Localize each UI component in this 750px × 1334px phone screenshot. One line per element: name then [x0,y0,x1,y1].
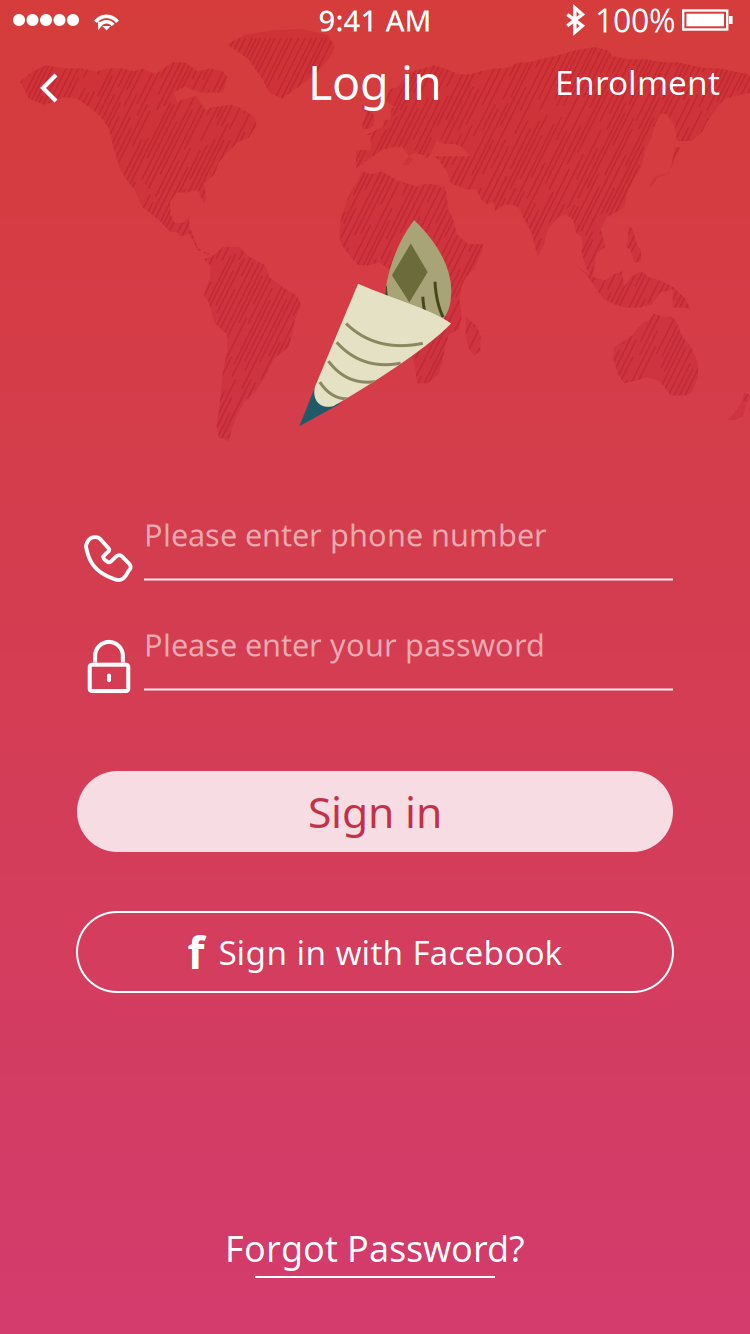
staticText: Sign in [308,783,442,840]
staticText: Log in [308,51,442,113]
staticText: Please enter phone number [144,514,547,555]
button[interactable]: Back [0,46,84,117]
button[interactable]: f [77,912,673,992]
staticText: f [187,923,204,981]
staticText: Forgot Password? [225,1224,525,1272]
staticText: Enrolment [555,60,720,104]
button[interactable]: Sign in [77,771,673,852]
button[interactable]: Forgot Password? [199,1212,551,1290]
staticText: Sign in with Facebook [218,930,562,974]
staticText: 9:41 AM [318,0,431,39]
staticText: Please enter your password [144,624,545,665]
button[interactable]: Enrolment [537,44,750,120]
staticText: 100% [595,0,676,41]
